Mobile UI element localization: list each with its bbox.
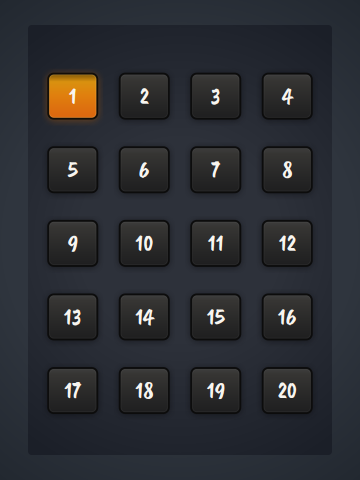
staticText: 7 [211, 155, 220, 184]
staticText: 8 [282, 155, 292, 184]
staticText: 2 [140, 82, 149, 110]
button[interactable]: 17 [48, 368, 97, 413]
staticText: 13 [64, 303, 82, 331]
staticText: 10 [135, 229, 153, 258]
staticText: 6 [139, 155, 150, 184]
button[interactable]: 13 [48, 294, 97, 339]
staticText: 5 [68, 155, 78, 184]
button[interactable]: 16 [263, 294, 312, 339]
button[interactable]: 5 [48, 147, 97, 192]
button[interactable]: 11 [191, 221, 240, 266]
button[interactable]: 10 [120, 221, 169, 266]
staticText: 4 [282, 82, 292, 110]
button[interactable]: 18 [120, 368, 169, 413]
staticText: 1 [69, 82, 77, 110]
staticText: 3 [211, 82, 221, 110]
staticText: 20 [278, 376, 297, 405]
button[interactable]: 6 [120, 147, 169, 192]
staticText: 17 [64, 376, 81, 405]
button[interactable]: 7 [191, 147, 240, 192]
button[interactable]: 20 [263, 368, 312, 413]
staticText: 9 [68, 229, 78, 258]
staticText: 16 [278, 303, 297, 331]
staticText: 15 [207, 303, 225, 331]
button[interactable]: 1 [48, 74, 97, 119]
staticText: 14 [135, 303, 153, 331]
button[interactable]: 15 [191, 294, 240, 339]
staticText: 11 [208, 229, 224, 258]
button[interactable]: 8 [263, 147, 312, 192]
button[interactable]: 2 [120, 74, 169, 119]
staticText: 19 [207, 376, 225, 405]
button[interactable]: 14 [120, 294, 169, 339]
staticText: 18 [135, 376, 153, 405]
button[interactable]: 12 [263, 221, 312, 266]
button[interactable]: 19 [191, 368, 240, 413]
button[interactable]: 4 [263, 74, 312, 119]
button[interactable]: 9 [48, 221, 97, 266]
staticText: 12 [279, 229, 296, 258]
button[interactable]: 3 [191, 74, 240, 119]
